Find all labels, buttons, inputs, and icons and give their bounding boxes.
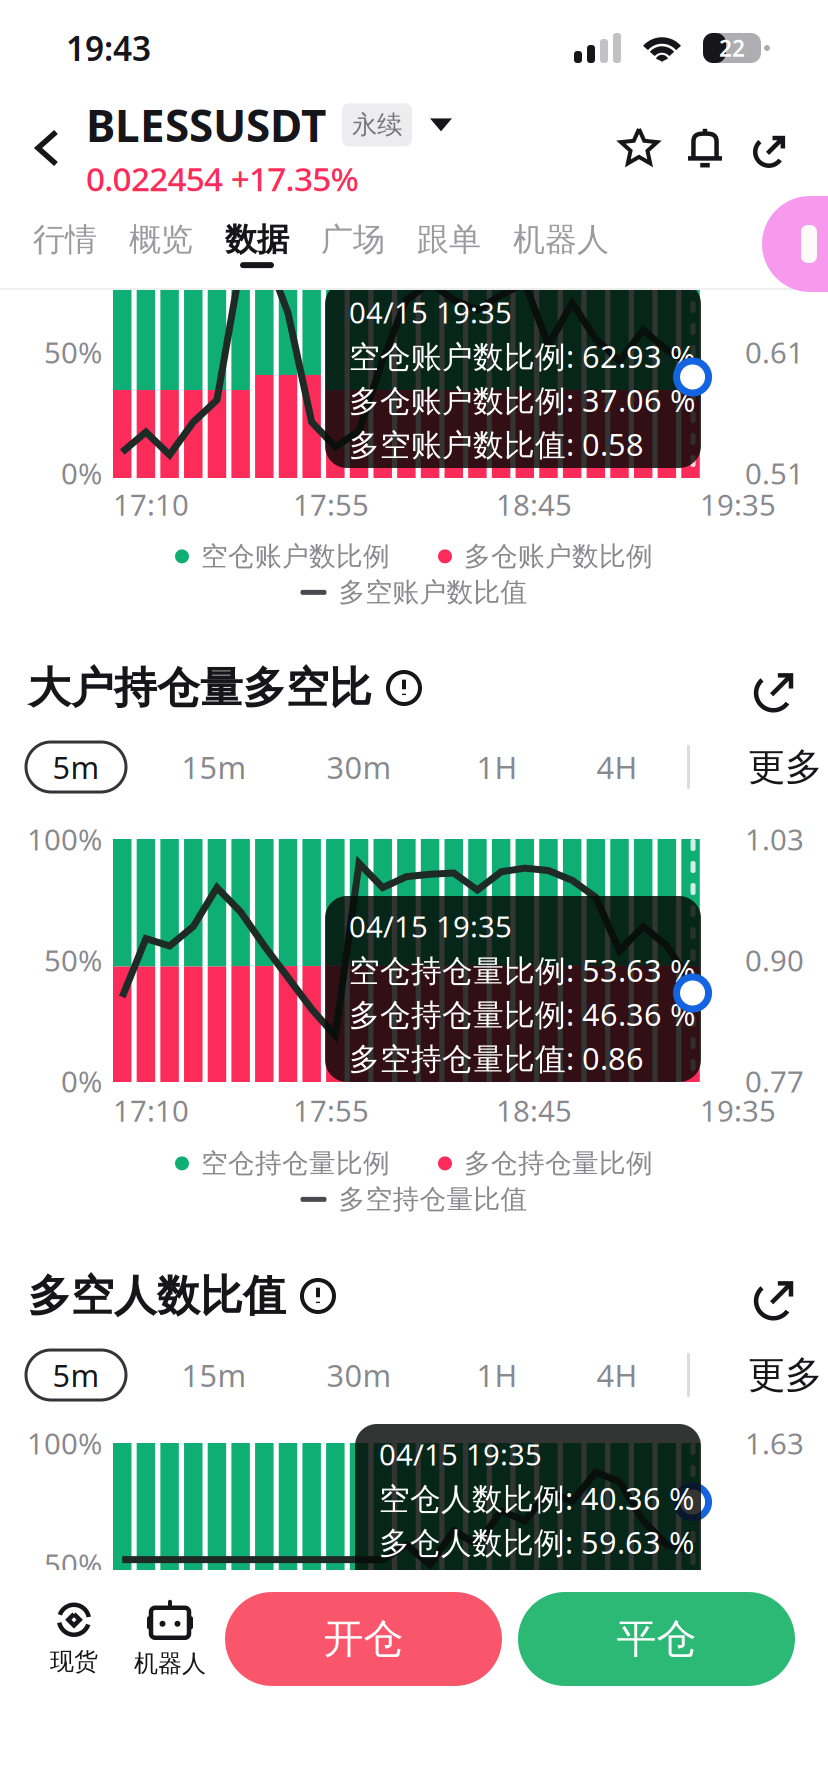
button[interactable]: Share — [752, 128, 790, 168]
staticText: 概览 — [129, 220, 193, 259]
staticText: 1.03 — [745, 819, 804, 858]
button[interactable]: Open 多空人数比值 — [752, 1271, 800, 1321]
staticText: 22 — [719, 33, 745, 63]
staticText: 广场 — [321, 220, 385, 259]
staticText: 19:35 — [700, 485, 776, 524]
staticText: 50% — [44, 1544, 102, 1583]
button[interactable]: 现货 — [26, 1592, 122, 1686]
button[interactable]: 跟单 — [417, 220, 481, 268]
button[interactable]: 更多 — [748, 1350, 822, 1400]
staticText: 5m — [52, 747, 99, 787]
button[interactable]: Back — [0, 96, 86, 200]
button[interactable]: 数据 — [225, 220, 289, 268]
staticText: 100% — [27, 819, 102, 858]
staticText: 空仓账户数比例: 62.93 % — [349, 336, 695, 376]
button[interactable]: 更多 — [748, 742, 822, 792]
button[interactable]: 开仓 — [225, 1592, 502, 1686]
button[interactable]: 4H — [592, 742, 642, 792]
staticText: 多仓人数比例: 59.63 % — [379, 1522, 694, 1562]
staticText: 大户持仓量多空比 — [28, 662, 372, 714]
staticText: 0.022454 +17.35% — [86, 156, 358, 200]
staticText: 17:55 — [293, 485, 369, 524]
staticText: 4H — [596, 747, 637, 787]
staticText: 17:55 — [293, 1091, 369, 1130]
staticText: 100% — [27, 1423, 102, 1462]
staticText: 04/15 19:35 — [349, 906, 512, 945]
staticText: 0.61 — [745, 332, 804, 371]
staticText: 多仓账户数比例: 37.06 % — [349, 380, 695, 420]
button[interactable]: 机器人 — [118, 1592, 222, 1686]
button[interactable]: 5m — [26, 742, 126, 792]
staticText: 更多 — [748, 744, 822, 790]
button[interactable]: Assistant — [762, 196, 828, 292]
button[interactable]: 机器人 — [513, 220, 609, 268]
staticText: 0.77 — [745, 1061, 804, 1100]
staticText: 50% — [44, 332, 102, 371]
button[interactable]: Favorite — [620, 129, 658, 167]
button[interactable]: 平仓 — [518, 1592, 795, 1686]
staticText: 永续 — [352, 109, 402, 140]
staticText: 1.63 — [745, 1423, 804, 1462]
staticText: 1H — [476, 1355, 517, 1395]
staticText: 18:45 — [496, 485, 572, 524]
staticText: 19:43 — [66, 26, 151, 70]
button[interactable]: 1H — [472, 1350, 522, 1400]
button[interactable]: 30m — [327, 742, 391, 792]
staticText: 04/15 19:35 — [349, 292, 512, 331]
staticText: 多空账户数比值: 0.58 — [349, 424, 644, 464]
staticText: 空仓持仓量比例 — [201, 1147, 390, 1180]
staticText: 0% — [61, 453, 102, 492]
staticText: 多仓账户数比例 — [464, 540, 653, 573]
staticText: 50% — [44, 940, 102, 979]
staticText: 15m — [181, 747, 246, 787]
staticText: 机器人 — [134, 1649, 206, 1678]
staticText: 17:10 — [113, 485, 189, 524]
staticText: 空仓持仓量比例: 53.63 % — [349, 950, 695, 990]
staticText: 平仓 — [616, 1614, 696, 1663]
staticText: 0.90 — [745, 940, 804, 979]
button[interactable]: 15m — [182, 1350, 246, 1400]
staticText: 行情 — [33, 220, 97, 259]
staticText: 空仓账户数比例 — [201, 540, 390, 573]
staticText: 5m — [52, 1355, 99, 1395]
staticText: 多空人数比值: 1.47 — [379, 1566, 643, 1606]
staticText: 多空持仓量比值: 0.86 — [349, 1038, 644, 1078]
staticText: 多空持仓量比值 — [338, 1183, 527, 1216]
button[interactable]: 4H — [592, 1350, 642, 1400]
button[interactable]: Alerts — [688, 128, 722, 168]
staticText: 机器人 — [513, 220, 609, 259]
button[interactable]: 1H — [472, 742, 522, 792]
staticText: 1H — [476, 747, 517, 787]
button[interactable]: Open 大户持仓量多空比 — [752, 663, 800, 713]
staticText: BLESSUSDT — [86, 96, 326, 154]
button[interactable]: 30m — [327, 1350, 391, 1400]
staticText: 19:35 — [700, 1091, 776, 1130]
staticText: 17:10 — [113, 1091, 189, 1130]
staticText: 空仓人数比例: 40.36 % — [379, 1478, 694, 1518]
staticText: 30m — [326, 1355, 391, 1395]
staticText: 多空人数比值 — [28, 1270, 286, 1322]
button[interactable]: 行情 — [33, 220, 97, 268]
staticText: 多空账户数比值 — [338, 576, 527, 609]
staticText: 0.51 — [745, 453, 804, 492]
staticText: 现货 — [50, 1647, 98, 1676]
button[interactable]: 概览 — [129, 220, 193, 268]
staticText: 开仓 — [323, 1614, 403, 1663]
button[interactable]: 15m — [182, 742, 246, 792]
staticText: 更多 — [748, 1352, 822, 1398]
staticText: 15m — [181, 1355, 246, 1395]
staticText: 跟单 — [417, 220, 481, 259]
staticText: 18:45 — [496, 1091, 572, 1130]
staticText: 4H — [596, 1355, 637, 1395]
button[interactable]: 广场 — [321, 220, 385, 268]
staticText: 30m — [326, 747, 391, 787]
staticText: 数据 — [225, 220, 289, 259]
button[interactable]: 5m — [26, 1350, 126, 1400]
staticText: 04/15 19:35 — [379, 1434, 542, 1473]
staticText: 多仓持仓量比例: 46.36 % — [349, 994, 695, 1034]
staticText: 多仓持仓量比例 — [464, 1147, 653, 1180]
staticText: 0% — [61, 1061, 102, 1100]
